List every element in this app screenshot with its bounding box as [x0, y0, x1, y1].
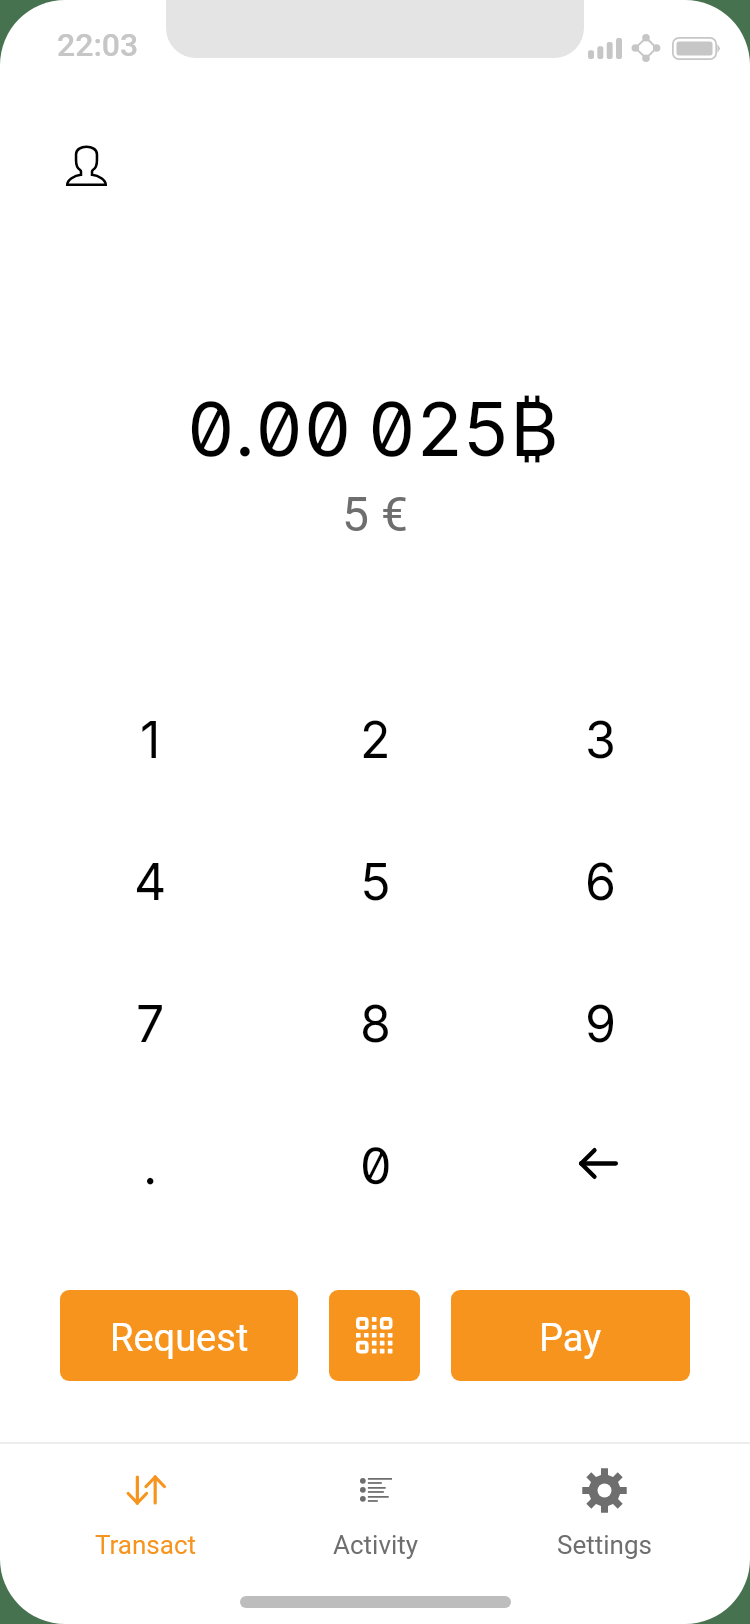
- staticText: 4: [134, 852, 167, 912]
- other: Backspace: [579, 1148, 618, 1179]
- button[interactable]: 4: [37, 811, 263, 953]
- staticText: .: [143, 1136, 158, 1196]
- staticText: 0.00 025₿: [0, 384, 749, 474]
- button[interactable]: 3: [488, 669, 713, 811]
- button[interactable]: Pay: [451, 1290, 690, 1381]
- button[interactable]: Activity: [261, 1444, 490, 1582]
- staticText: Transact: [95, 1530, 197, 1560]
- button[interactable]: Transact: [31, 1444, 261, 1582]
- button[interactable]: 1: [37, 669, 263, 811]
- staticText: Pay: [539, 1316, 602, 1361]
- staticText: 5: [361, 852, 391, 912]
- staticText: 1: [140, 710, 161, 770]
- button[interactable]: Profile: [50, 128, 122, 200]
- staticText: 8: [360, 994, 391, 1054]
- staticText: 0: [360, 1136, 392, 1196]
- staticText: 2: [360, 710, 391, 770]
- button[interactable]: Scan QR code: [329, 1290, 420, 1381]
- staticText: 9: [585, 994, 617, 1054]
- button[interactable]: Settings: [490, 1444, 719, 1582]
- button[interactable]: Request: [60, 1290, 298, 1381]
- staticText: 7: [136, 994, 165, 1054]
- button[interactable]: 0: [263, 1095, 488, 1237]
- staticText: 22:03: [57, 26, 139, 64]
- staticText: Request: [110, 1316, 249, 1361]
- button[interactable]: 2: [263, 669, 488, 811]
- staticText: 3: [585, 710, 616, 770]
- staticText: 6: [585, 852, 617, 912]
- staticText: Activity: [333, 1530, 419, 1560]
- button[interactable]: 9: [488, 953, 713, 1095]
- staticText: 5 €: [0, 486, 750, 542]
- staticText: Settings: [557, 1530, 652, 1560]
- button[interactable]: 5: [263, 811, 488, 953]
- button[interactable]: 8: [263, 953, 488, 1095]
- button[interactable]: 7: [37, 953, 263, 1095]
- button[interactable]: .: [37, 1095, 263, 1237]
- button[interactable]: Backspace: [488, 1095, 713, 1237]
- button[interactable]: 6: [488, 811, 713, 953]
